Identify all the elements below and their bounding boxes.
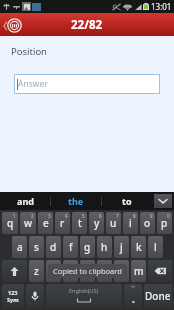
- button[interactable]: r: [55, 212, 70, 234]
- staticText: English(US): [69, 287, 99, 294]
- button[interactable]: Answer: [14, 74, 160, 94]
- staticText: 1: [13, 213, 16, 219]
- button[interactable]: More suggestions: [154, 194, 172, 208]
- staticText: Copied to clipboard: [53, 266, 122, 276]
- staticText: q: [7, 216, 14, 230]
- staticText: Done: [145, 289, 171, 303]
- button[interactable]: j: [114, 236, 129, 258]
- staticText: u: [110, 216, 117, 230]
- button[interactable]: c: [63, 260, 78, 282]
- staticText: and: [17, 195, 34, 207]
- staticText: d: [50, 240, 57, 254]
- staticText: y: [94, 216, 100, 230]
- button[interactable]: p: [157, 212, 172, 234]
- button[interactable]: u: [106, 212, 121, 234]
- button[interactable]: l: [148, 236, 163, 258]
- staticText: 3: [48, 213, 51, 219]
- staticText: f: [69, 240, 73, 254]
- staticText: 4: [65, 213, 68, 219]
- button[interactable]: v: [80, 260, 95, 282]
- button[interactable]: to: [102, 192, 152, 210]
- staticText: Position: [11, 45, 47, 58]
- button[interactable]: Voice input: [26, 284, 44, 308]
- staticText: n: [118, 264, 125, 278]
- staticText: t: [78, 216, 82, 230]
- button[interactable]: w: [20, 212, 36, 234]
- button[interactable]: and: [0, 192, 50, 210]
- staticText: v: [85, 264, 91, 278]
- staticText: 2: [31, 213, 34, 219]
- button[interactable]: n: [114, 260, 129, 282]
- staticText: w: [24, 216, 33, 230]
- button[interactable]: z: [29, 260, 44, 282]
- staticText: 6: [99, 213, 102, 219]
- staticText: c: [68, 264, 73, 278]
- staticText: j: [120, 240, 123, 254]
- staticText: s: [34, 240, 39, 254]
- staticText: Sym: [7, 296, 19, 303]
- staticText: 9: [150, 213, 153, 219]
- button[interactable]: y: [89, 212, 104, 234]
- button[interactable]: Period: [124, 284, 142, 308]
- button[interactable]: Symbols: [2, 284, 24, 308]
- staticText: p: [161, 216, 168, 230]
- button[interactable]: b: [97, 260, 112, 282]
- staticText: 0: [167, 213, 170, 219]
- staticText: 13:01: [151, 1, 172, 12]
- staticText: b: [101, 264, 108, 278]
- button[interactable]: Done: [144, 284, 172, 308]
- staticText: "": [131, 285, 136, 292]
- button[interactable]: Space: [46, 284, 122, 308]
- button[interactable]: the: [51, 192, 101, 210]
- button[interactable]: f: [63, 236, 78, 258]
- staticText: i: [129, 216, 132, 230]
- button[interactable]: m: [131, 260, 146, 282]
- staticText: m: [134, 264, 144, 278]
- button[interactable]: o: [140, 212, 155, 234]
- button[interactable]: s: [29, 236, 44, 258]
- button[interactable]: e: [38, 212, 53, 234]
- staticText: 22/82: [71, 17, 103, 33]
- staticText: the: [68, 195, 84, 207]
- staticText: g: [84, 240, 91, 254]
- button[interactable]: a: [12, 236, 27, 258]
- button[interactable]: i: [123, 212, 138, 234]
- staticText: o: [144, 216, 151, 230]
- staticText: a: [17, 240, 23, 254]
- staticText: l: [154, 240, 157, 254]
- staticText: h: [101, 240, 108, 254]
- button[interactable]: Up: [2, 15, 22, 35]
- staticText: e: [43, 216, 49, 230]
- staticText: k: [136, 240, 142, 254]
- staticText: r: [60, 216, 65, 230]
- button[interactable]: Shift: [2, 260, 27, 282]
- staticText: 5: [82, 213, 85, 219]
- staticText: to: [122, 195, 132, 207]
- button[interactable]: d: [46, 236, 61, 258]
- button[interactable]: x: [46, 260, 61, 282]
- button[interactable]: g: [80, 236, 95, 258]
- button[interactable]: k: [131, 236, 146, 258]
- staticText: x: [51, 264, 57, 278]
- staticText: 8: [133, 213, 136, 219]
- staticText: Answer: [18, 78, 48, 90]
- staticText: 7: [116, 213, 119, 219]
- button[interactable]: t: [72, 212, 87, 234]
- button[interactable]: q: [2, 212, 18, 234]
- staticText: .: [132, 292, 135, 306]
- staticText: z: [34, 264, 39, 278]
- button[interactable]: h: [97, 236, 112, 258]
- staticText: 123: [8, 289, 18, 296]
- button[interactable]: Backspace: [148, 260, 172, 282]
